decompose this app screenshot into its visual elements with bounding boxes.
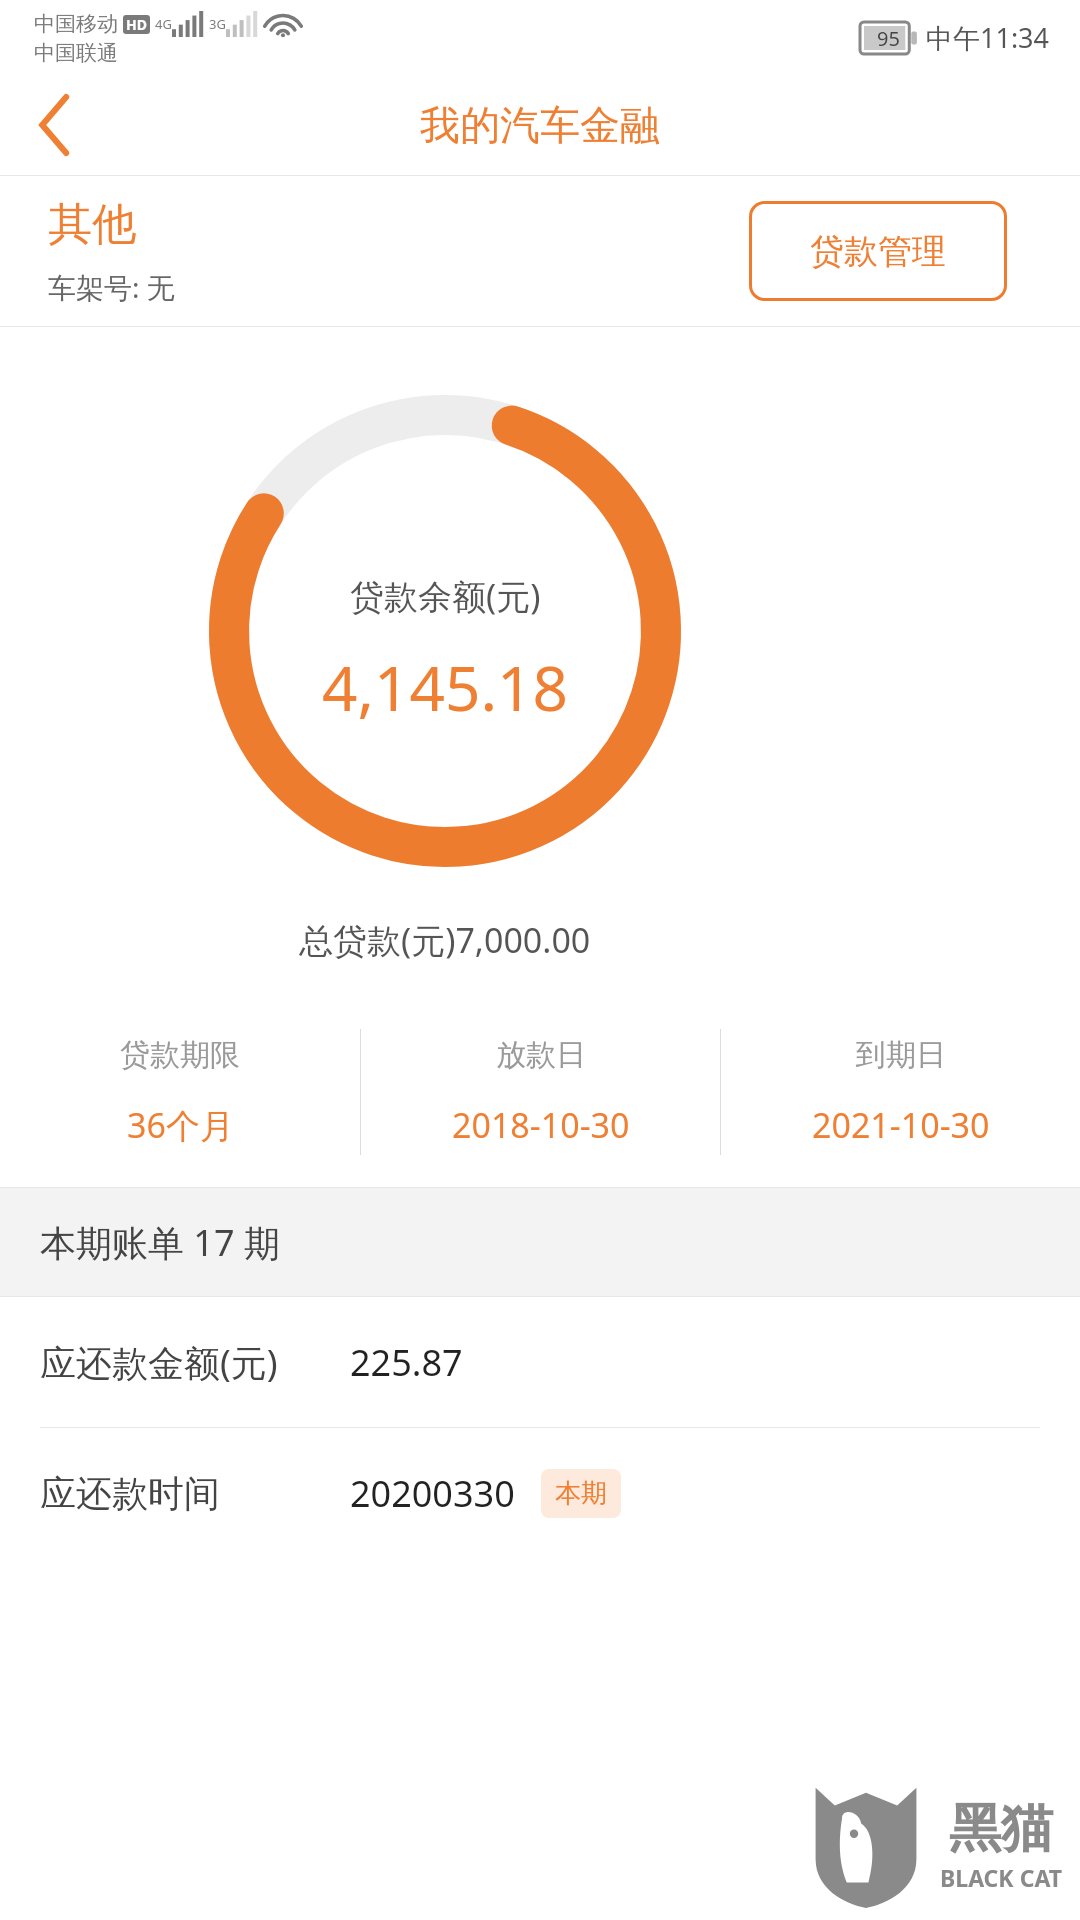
button[interactable]: 应还款金额(元) xyxy=(0,1297,1080,1427)
staticText: 3G xyxy=(209,15,226,33)
staticText: 2018-10-30 xyxy=(452,1102,630,1148)
button[interactable]: 应还款时间 xyxy=(0,1428,1080,1558)
staticText: 贷款管理 xyxy=(810,230,946,273)
staticText: 本期账单 17 期 xyxy=(40,1218,280,1267)
button[interactable]: Back xyxy=(0,75,110,175)
staticText: HD xyxy=(126,15,147,34)
staticText: 中国联通 xyxy=(34,40,118,66)
staticText: 中国移动 xyxy=(34,11,118,37)
staticText: 4G xyxy=(155,15,172,33)
staticText: BLACK CAT xyxy=(940,1862,1062,1893)
button[interactable]: 到期日 xyxy=(721,1027,1080,1157)
staticText: 36个月 xyxy=(127,1102,234,1148)
staticText: 中午11:34 xyxy=(926,19,1050,56)
button[interactable]: 贷款期限 xyxy=(0,1027,360,1157)
staticText: 其他 xyxy=(48,197,136,252)
button[interactable]: 贷款管理 xyxy=(749,201,1007,301)
staticText: 95 xyxy=(877,25,900,52)
staticText: 总贷款(元)7,000.00 xyxy=(299,917,591,963)
staticText: 贷款期限 xyxy=(120,1036,240,1074)
staticText: 应还款金额(元) xyxy=(40,1338,278,1387)
staticText: 应还款时间 xyxy=(40,1471,220,1516)
staticText: 车架号: 无 xyxy=(48,268,175,306)
staticText: 贷款余额(元) xyxy=(350,573,541,619)
staticText: 黑猫 xyxy=(949,1796,1053,1862)
staticText: 2021-10-30 xyxy=(812,1102,990,1148)
staticText: 本期 xyxy=(555,1477,607,1510)
staticText: 225.87 xyxy=(350,1338,463,1387)
button[interactable]: 放款日 xyxy=(361,1027,720,1157)
staticText: 放款日 xyxy=(496,1036,586,1074)
staticText: 我的汽车金融 xyxy=(420,100,660,150)
staticText: 到期日 xyxy=(856,1036,946,1074)
staticText: 4,145.18 xyxy=(322,645,569,729)
staticText: 20200330 xyxy=(350,1469,515,1518)
